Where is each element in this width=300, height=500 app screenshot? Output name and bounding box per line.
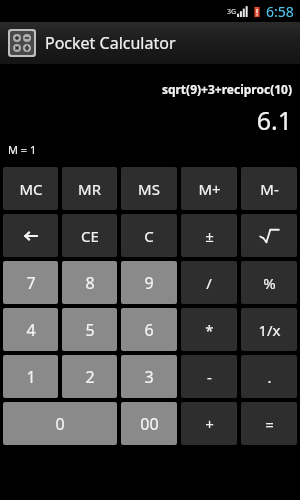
staticText: 6.1 <box>0 103 292 137</box>
button[interactable]: M- <box>241 167 297 210</box>
staticText: 7 <box>26 272 36 294</box>
staticText: 3 <box>144 366 154 388</box>
staticText: sqrt(9)+3+reciproc(10) <box>0 81 292 97</box>
button[interactable]: 9 <box>121 261 177 304</box>
staticText: M = 1 <box>8 142 37 157</box>
button[interactable]: 00 <box>121 402 177 445</box>
button[interactable]: MR <box>62 167 117 210</box>
button[interactable]: . <box>241 355 297 398</box>
staticText: CE <box>81 226 99 246</box>
staticText: + <box>205 414 214 434</box>
staticText: - <box>207 367 212 387</box>
button[interactable]: % <box>241 261 297 304</box>
staticText: 9 <box>144 272 154 294</box>
staticText: MR <box>78 179 101 199</box>
button[interactable]: ± <box>181 214 237 257</box>
staticText: 3G <box>227 7 237 17</box>
button[interactable]: = <box>241 402 297 445</box>
staticText: M- <box>260 179 279 199</box>
staticText: 6:58 <box>266 2 294 21</box>
staticText: 1/x <box>258 320 281 340</box>
staticText: * <box>205 320 214 340</box>
button[interactable]: 3 <box>121 355 177 398</box>
button[interactable]: - <box>181 355 237 398</box>
button[interactable]: / <box>181 261 237 304</box>
button[interactable]: MC <box>3 167 58 210</box>
button[interactable]: Backspace <box>3 214 58 257</box>
staticText: 00 <box>140 413 159 435</box>
button[interactable]: Square root <box>241 214 297 257</box>
staticText: 0 <box>55 413 65 435</box>
staticText: 8 <box>85 272 95 294</box>
button[interactable]: 1 <box>3 355 58 398</box>
staticText: Pocket Calculator <box>45 32 176 54</box>
button[interactable]: 2 <box>62 355 117 398</box>
button[interactable]: 0 <box>3 402 117 445</box>
staticText: MS <box>138 179 160 199</box>
button[interactable]: * <box>181 308 237 351</box>
staticText: % <box>263 273 276 293</box>
staticText: = <box>265 414 274 434</box>
staticText: 2 <box>85 366 95 388</box>
button[interactable]: + <box>181 402 237 445</box>
staticText: ± <box>205 226 214 246</box>
staticText: MC <box>19 179 43 199</box>
button[interactable]: 1/x <box>241 308 297 351</box>
staticText: 1 <box>26 366 36 388</box>
button[interactable]: C <box>121 214 177 257</box>
button[interactable]: 4 <box>3 308 58 351</box>
button[interactable]: MS <box>121 167 177 210</box>
button[interactable]: M+ <box>181 167 237 210</box>
button[interactable]: 6 <box>121 308 177 351</box>
staticText: C <box>144 226 154 246</box>
staticText: M+ <box>198 179 221 199</box>
staticText: / <box>206 273 212 293</box>
button[interactable]: 5 <box>62 308 117 351</box>
button[interactable]: 7 <box>3 261 58 304</box>
staticText: . <box>267 367 272 387</box>
button[interactable]: CE <box>62 214 117 257</box>
staticText: 6 <box>144 319 154 341</box>
button[interactable]: 8 <box>62 261 117 304</box>
staticText: 4 <box>26 319 36 341</box>
staticText: 5 <box>85 319 95 341</box>
